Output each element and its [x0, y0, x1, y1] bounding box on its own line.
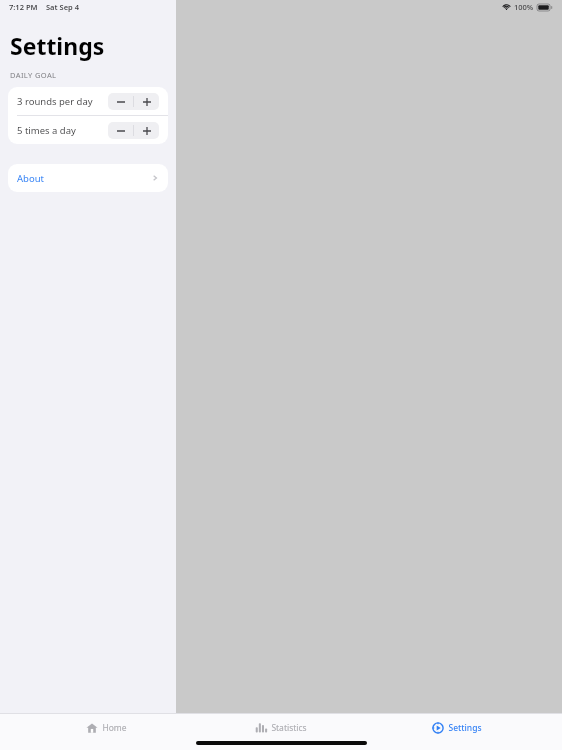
- staticText: Statistics: [271, 722, 307, 734]
- staticText: Home: [102, 722, 127, 734]
- button[interactable]: Increase: [134, 122, 159, 139]
- button[interactable]: About: [8, 164, 168, 192]
- button[interactable]: Statistics: [211, 713, 351, 750]
- button[interactable]: 3 rounds per day: [8, 87, 168, 115]
- staticText: About: [17, 172, 44, 185]
- button[interactable]: Increase: [134, 93, 159, 110]
- button[interactable]: Settings: [387, 713, 527, 750]
- staticText: 3 rounds per day: [17, 95, 93, 108]
- staticText: Settings: [10, 30, 105, 61]
- staticText: 7:12 PM: [9, 2, 38, 12]
- staticText: Sat Sep 4: [46, 2, 79, 12]
- staticText: 5 times a day: [17, 124, 76, 137]
- button[interactable]: Decrease: [108, 93, 133, 110]
- staticText: Settings: [448, 722, 482, 734]
- button[interactable]: Home: [36, 713, 176, 750]
- staticText: DAILY GOAL: [10, 70, 57, 80]
- button[interactable]: Decrease: [108, 122, 133, 139]
- staticText: 100%: [514, 2, 534, 12]
- button[interactable]: 5 times a day: [8, 116, 168, 144]
